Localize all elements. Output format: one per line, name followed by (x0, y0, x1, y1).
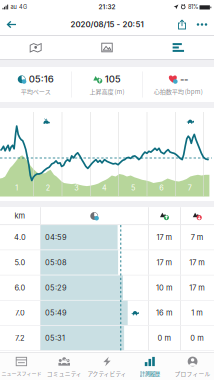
staticText: アクティビティ (87, 369, 126, 378)
button[interactable]: Photos (71, 36, 143, 59)
staticText: 05:29 (45, 283, 67, 292)
staticText: 0 m (190, 334, 204, 343)
staticText: 7 m (191, 233, 204, 242)
staticText: 4 (102, 184, 107, 192)
staticText: 4G (19, 4, 27, 10)
staticText: 7 (188, 184, 192, 192)
button[interactable]: Charts (143, 36, 214, 59)
staticText: 上昇高度 (m) (89, 87, 124, 96)
staticText: 0 m (157, 334, 171, 343)
staticText: 計測履歴 (140, 369, 160, 377)
staticText: 05:49 (45, 308, 67, 317)
staticText: km (14, 211, 25, 220)
staticText: 05:31 (45, 334, 65, 343)
button[interactable]: Share (172, 14, 192, 35)
button[interactable]: アクティビティ (86, 353, 128, 380)
staticText: 心拍数平均 (bpm) (154, 87, 203, 96)
button[interactable]: コミュニティ (43, 353, 86, 380)
staticText: 平均ペース (21, 87, 51, 96)
staticText: 17 m (156, 233, 172, 242)
staticText: 10 m (156, 283, 173, 292)
staticText: 3 (74, 184, 78, 192)
staticText: 17 m (189, 258, 205, 267)
staticText: 6.0 (14, 283, 25, 292)
staticText: 05:16 (29, 73, 54, 85)
button[interactable]: More (192, 14, 212, 35)
staticText: 7.0 (15, 308, 25, 317)
button[interactable]: プロフィール (171, 353, 214, 380)
staticText: au (10, 4, 16, 10)
staticText: 5.0 (14, 258, 25, 267)
staticText: 2 (46, 184, 50, 192)
staticText: 17 m (189, 283, 205, 292)
staticText: プロフィール (175, 369, 211, 378)
button[interactable]: 計測履歴 (128, 353, 171, 380)
button[interactable]: Map (0, 36, 71, 59)
staticText: 17 m (156, 258, 172, 267)
staticText: 105 (105, 73, 121, 85)
staticText: 1 (15, 184, 18, 192)
staticText: 21:32 (98, 3, 115, 11)
staticText: 04:59 (45, 233, 67, 242)
staticText: 81% (188, 4, 198, 10)
staticText: 6 (159, 184, 163, 192)
staticText: ニュースフィード (1, 369, 41, 377)
staticText: 05:08 (45, 258, 67, 267)
button[interactable]: ニュースフィード (0, 353, 43, 380)
staticText: 1 m (191, 308, 203, 317)
staticText: 7.2 (15, 334, 25, 343)
staticText: 2020/08/15 - 20:51 (70, 20, 143, 29)
staticText: 16 m (156, 308, 173, 317)
staticText: 5 (131, 184, 135, 192)
staticText: -- (180, 73, 188, 85)
button[interactable]: Back (1, 14, 21, 35)
staticText: 4.0 (14, 233, 26, 242)
staticText: コミュニティ (47, 369, 82, 378)
